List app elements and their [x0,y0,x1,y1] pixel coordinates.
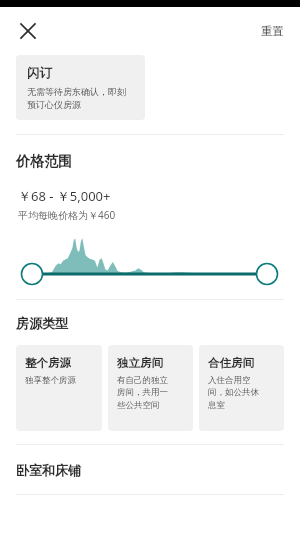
staticText: ￥68 - ￥5,000+ [18,187,111,205]
staticText: 房源类型 [16,315,68,331]
button[interactable]: Maximum price [256,263,278,285]
staticText: 重置 [261,24,284,38]
button[interactable]: 独立房间 [108,345,193,431]
button[interactable]: Minimum price [21,263,43,285]
button[interactable]: 整个房源 [16,345,102,431]
staticText: 合住房间 [208,356,254,370]
staticText: 闪订 [27,65,52,81]
staticText: 平均每晚价格为￥460 [18,208,116,222]
staticText: 独享整个房源 [25,375,76,386]
staticText: 价格范围 [16,153,72,171]
button[interactable]: 闪订 [16,55,145,120]
staticText: 独立房间 [117,356,163,370]
staticText: 有自己的独立 房间，共用一 些公共空间 [117,375,168,411]
staticText: 整个房源 [25,356,71,370]
staticText: 无需等待房东确认，即刻 预订心仪房源 [27,86,126,110]
button[interactable]: 合住房间 [199,345,284,431]
button[interactable]: Close [8,11,48,51]
staticText: 入住合用空 间，如公共休 息室 [208,375,259,411]
button[interactable]: 重置 [245,16,300,46]
staticText: 卧室和床铺 [16,462,81,478]
